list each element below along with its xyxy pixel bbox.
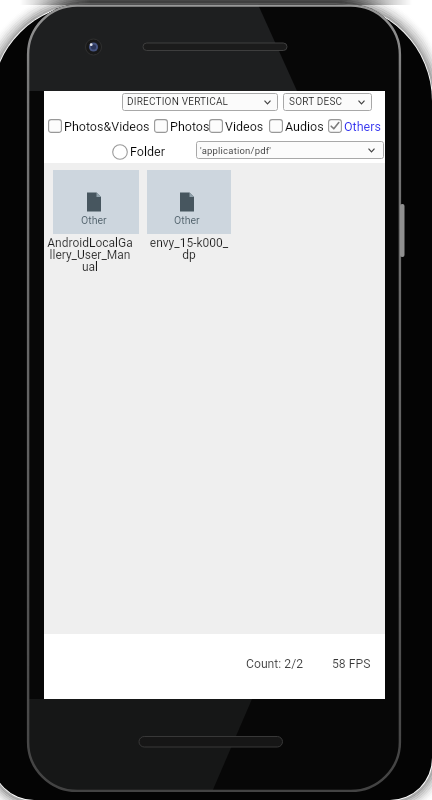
staticText: SORT DESC xyxy=(289,96,343,108)
button[interactable]: AndroidLocalGa llery_User_Man ual xyxy=(43,236,137,274)
staticText: Other xyxy=(81,214,107,226)
button[interactable]: Other xyxy=(147,170,231,234)
button[interactable]: Other xyxy=(53,170,139,234)
button[interactable]: DIRECTION VERTICAL xyxy=(122,93,278,111)
staticText: 'application/pdf' xyxy=(200,145,272,156)
button[interactable]: Videos xyxy=(209,118,264,134)
staticText: Count: 2/2 xyxy=(246,657,304,671)
staticText: Photos xyxy=(170,119,210,134)
button[interactable]: Audios xyxy=(269,118,324,134)
staticText: Other xyxy=(174,214,200,226)
button[interactable]: Photos xyxy=(154,118,210,134)
staticText: DIRECTION VERTICAL xyxy=(127,96,229,108)
staticText: Photos&Videos xyxy=(64,119,150,134)
button[interactable]: envy_15-k000_ dp xyxy=(142,236,236,262)
button[interactable]: 'application/pdf' xyxy=(196,141,384,159)
staticText: Audios xyxy=(285,119,324,134)
button[interactable]: Folder xyxy=(112,143,165,160)
button[interactable]: SORT DESC xyxy=(283,93,372,111)
button[interactable]: Photos&Videos xyxy=(48,118,150,134)
staticText: Folder xyxy=(130,144,165,159)
staticText: 58 FPS xyxy=(332,657,371,671)
staticText: Videos xyxy=(225,119,264,134)
button[interactable]: Others xyxy=(328,118,381,134)
staticText: Others xyxy=(344,119,381,134)
